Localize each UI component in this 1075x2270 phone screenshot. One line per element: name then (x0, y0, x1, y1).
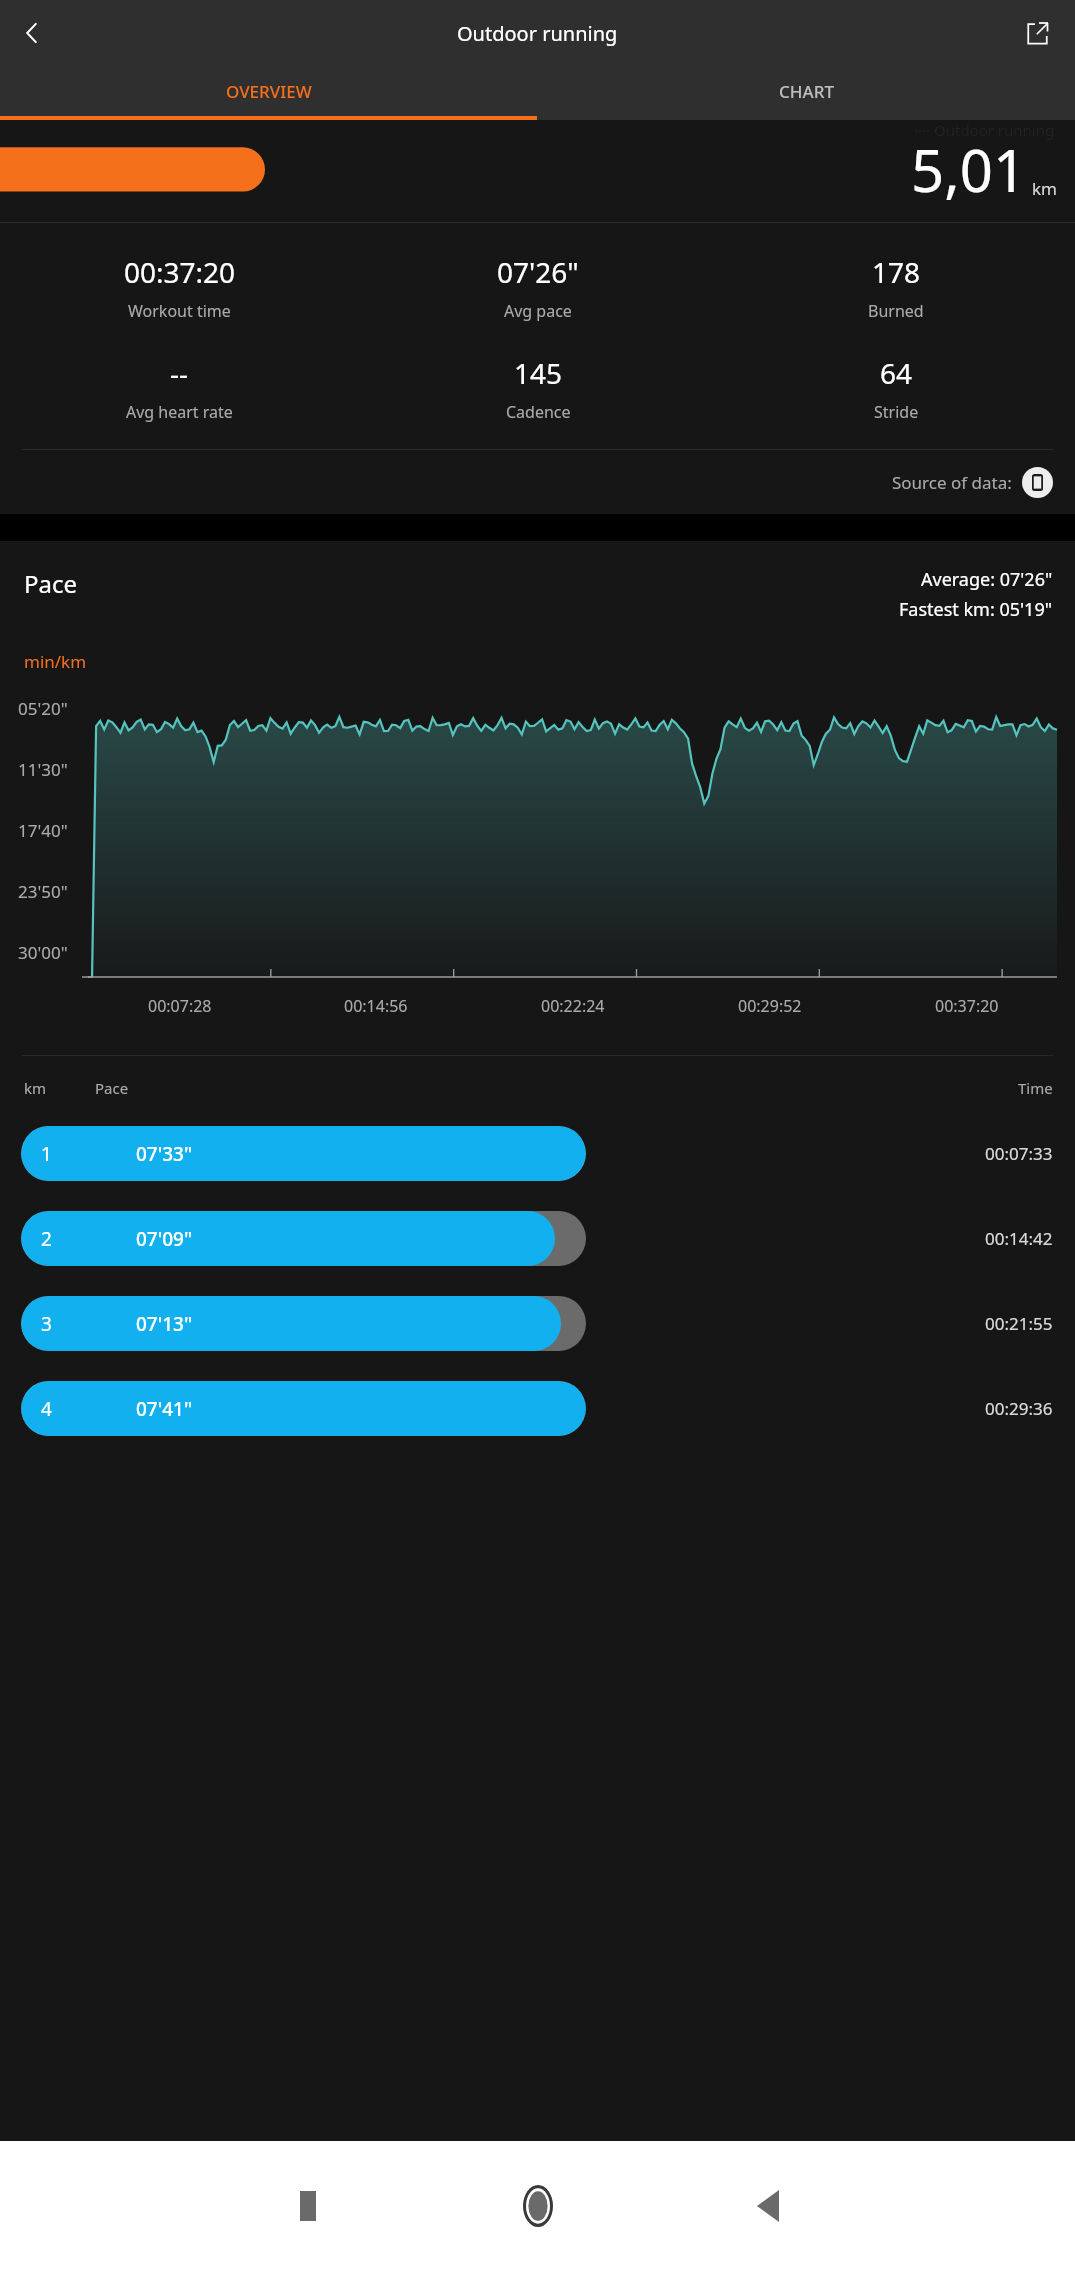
button[interactable]: Home (423, 2141, 653, 2270)
staticText: Pace (95, 1078, 1018, 1098)
staticText: 00:14:42 (985, 1227, 1053, 1250)
staticText: 00:22:24 (541, 995, 605, 1017)
staticText: 07'26" (497, 253, 579, 291)
button[interactable]: Share (1011, 7, 1063, 59)
button[interactable]: Back (653, 2141, 883, 2270)
staticText: 00:07:28 (148, 995, 212, 1017)
staticText: Cadence (506, 401, 571, 423)
staticText: OVERVIEW (226, 80, 312, 103)
staticText: Fastest km: 05'19" (899, 597, 1053, 622)
staticText: 17'40" (18, 819, 68, 842)
staticText: 11'30" (18, 758, 68, 781)
staticText: -- (170, 354, 189, 392)
staticText: CHART (779, 80, 834, 103)
staticText: 23'50" (18, 880, 68, 903)
staticText: Avg heart rate (126, 401, 233, 423)
staticText: km (24, 1078, 47, 1098)
staticText: 00:14:56 (344, 995, 408, 1017)
button[interactable]: Back (6, 7, 58, 59)
button[interactable]: 1 (0, 1126, 1075, 1181)
staticText: km (1032, 177, 1057, 200)
staticText: 00:37:20 (124, 253, 236, 291)
staticText: 64 (880, 354, 913, 392)
staticText: Stride (874, 401, 919, 423)
button[interactable]: 2 (0, 1211, 1075, 1266)
button[interactable]: OVERVIEW (0, 66, 537, 116)
staticText: 00:29:36 (985, 1397, 1053, 1420)
staticText: 05'20" (18, 697, 68, 720)
staticText: 00:21:55 (985, 1312, 1053, 1335)
staticText: Average: 07'26" (921, 567, 1053, 592)
staticText: 4 (41, 1396, 52, 1422)
staticText: Outdoor running (457, 20, 618, 47)
staticText: Workout time (128, 300, 231, 322)
staticText: 07'13" (136, 1311, 193, 1337)
staticText: 07'09" (136, 1226, 193, 1252)
staticText: 145 (514, 354, 563, 392)
staticText: 178 (872, 253, 921, 291)
staticText: 00:29:52 (738, 995, 802, 1017)
staticText: 2 (41, 1226, 52, 1252)
staticText: 3 (41, 1311, 52, 1337)
staticText: Pace (24, 567, 899, 600)
staticText: min/km (24, 650, 87, 673)
staticText: ···· Outdoor running (914, 120, 1055, 140)
staticText: Time (1018, 1078, 1053, 1098)
staticText: 00:37:20 (935, 995, 999, 1017)
button[interactable]: Data source phone (1022, 467, 1053, 498)
staticText: Avg pace (504, 300, 572, 322)
staticText: 5,01 (911, 130, 1027, 209)
staticText: 07'41" (136, 1396, 193, 1422)
staticText: 1 (41, 1141, 52, 1167)
button[interactable]: CHART (537, 66, 1075, 116)
button[interactable]: 4 (0, 1381, 1075, 1436)
button[interactable]: 3 (0, 1296, 1075, 1351)
staticText: Burned (868, 300, 924, 322)
button[interactable]: Recents (193, 2141, 423, 2270)
staticText: 30'00" (18, 941, 68, 964)
staticText: 07'33" (136, 1141, 193, 1167)
staticText: Source of data: (892, 471, 1012, 494)
staticText: 00:07:33 (985, 1142, 1053, 1165)
